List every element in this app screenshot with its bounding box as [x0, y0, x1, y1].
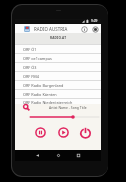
button[interactable]: Power: [80, 127, 91, 138]
staticText: ORF Ö3: [23, 65, 37, 70]
button[interactable]: Pause: [35, 127, 46, 138]
button[interactable]: ORF Radio Niederösterreich: [15, 99, 101, 105]
button[interactable]: ORF Radio Kärnten: [15, 90, 101, 98]
button[interactable]: ORF Ö1: [15, 45, 101, 53]
button[interactable]: Search: [23, 104, 30, 111]
button[interactable]: Recents: [75, 152, 82, 159]
staticText: 9:29: [91, 19, 98, 23]
staticText: ORF Radio Burgenland: [23, 83, 64, 88]
button[interactable]: Home: [55, 152, 62, 159]
button[interactable]: ORF FM4: [15, 72, 101, 80]
button[interactable]: Settings: [92, 26, 99, 33]
staticText: Artist Name - Song Title: [49, 105, 87, 110]
staticText: ORF FM4: [23, 74, 39, 79]
staticText: RADIO.AT: [50, 36, 67, 40]
button[interactable]: ORF Ö3: [15, 63, 101, 71]
button[interactable]: Play: [58, 127, 69, 138]
staticText: ORF Radio Niederösterreich: [23, 100, 73, 105]
staticText: ORF Radio Kärnten: [23, 92, 57, 97]
button[interactable]: ORF oe1campus: [15, 54, 101, 62]
button[interactable]: Info: [81, 26, 88, 33]
staticText: ORF Ö1: [23, 47, 37, 52]
staticText: RADIO AUSTRIA: [34, 26, 68, 32]
button[interactable]: Back: [34, 152, 41, 159]
button[interactable]: ORF Radio Burgenland: [15, 81, 101, 89]
staticText: ORF oe1campus: [23, 56, 52, 61]
